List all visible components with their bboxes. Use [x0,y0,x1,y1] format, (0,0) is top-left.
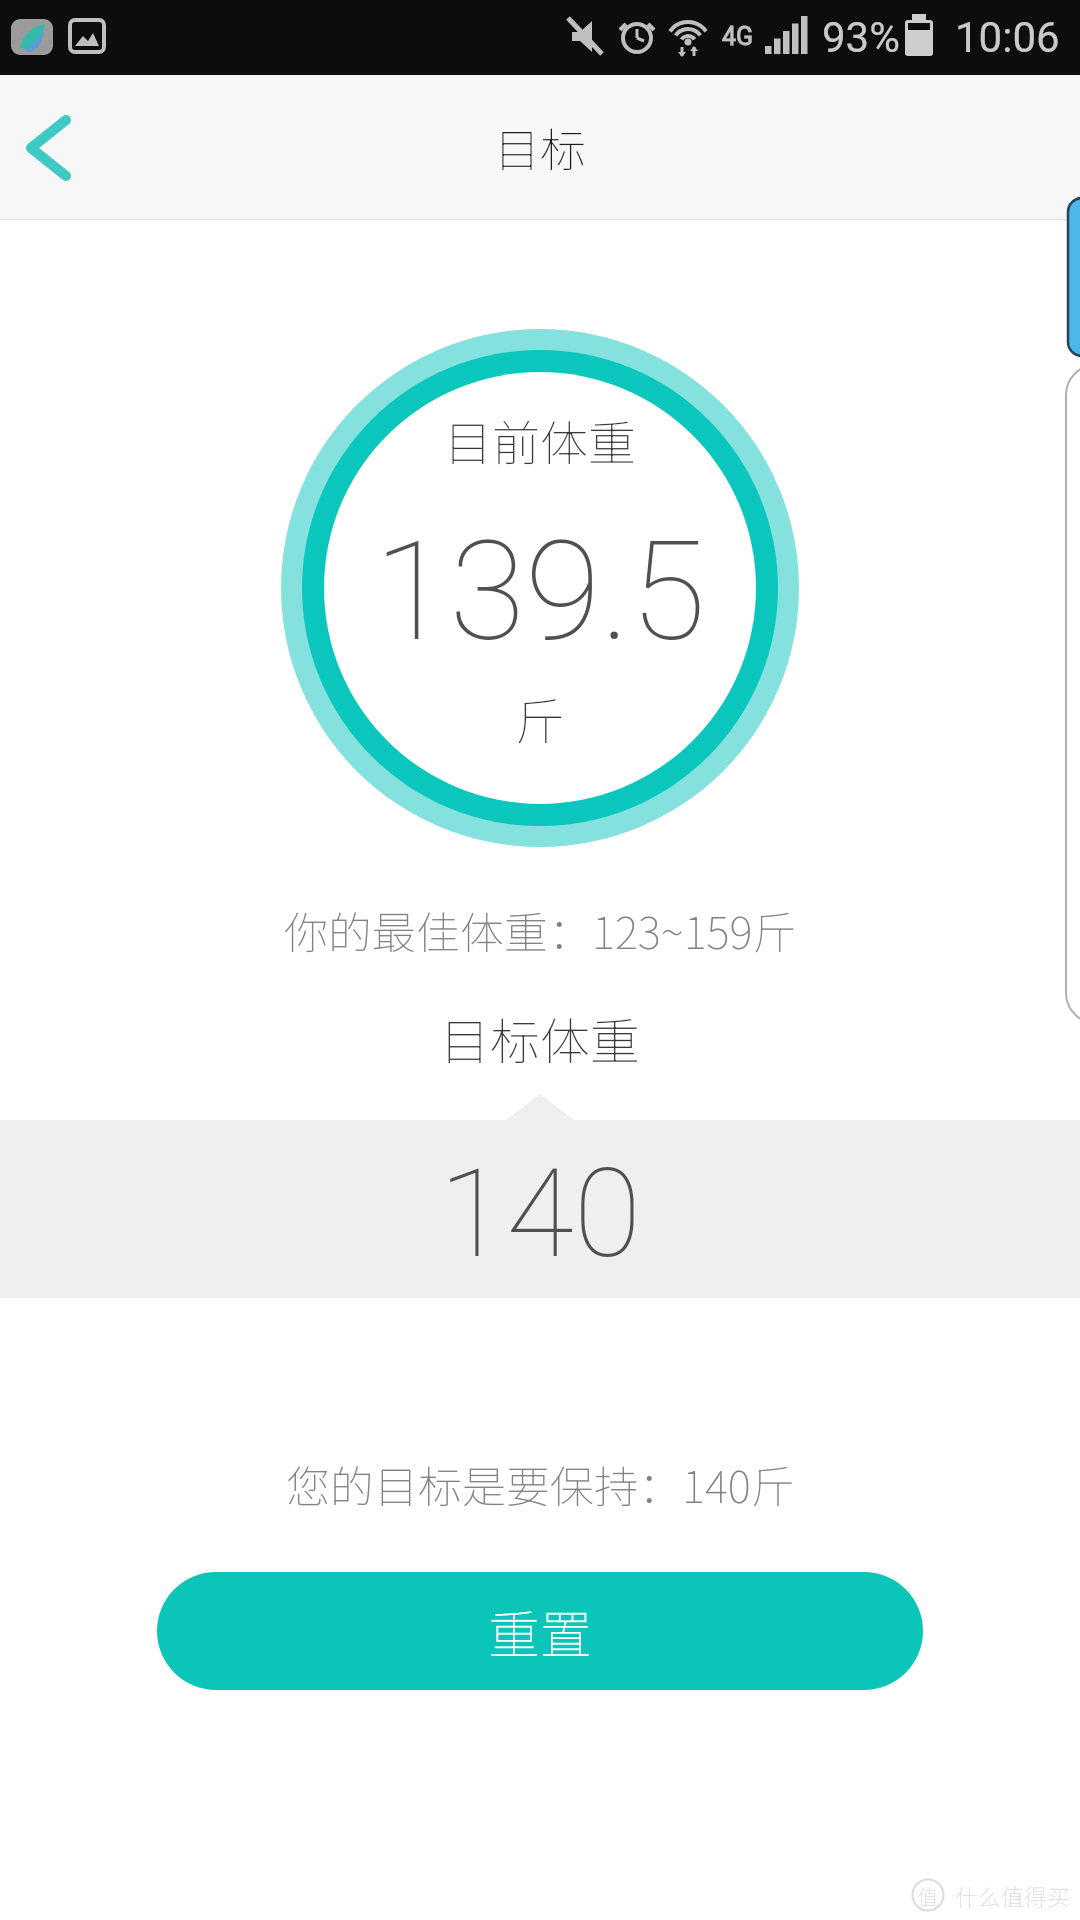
staticText: 值 [917,1881,938,1911]
button[interactable] [0,75,100,220]
staticText: 你的最佳体重：123~159斤 [284,898,797,962]
staticText: 您的目标是要保持：140斤 [286,1452,795,1516]
staticText: 目标 [494,114,586,181]
staticText: 重置 [488,1594,593,1669]
button[interactable]: 重置 [157,1572,923,1690]
staticText: 10:06 [955,13,1060,62]
staticText: 140 [439,1142,641,1286]
staticText: 目前体重 [444,405,637,475]
staticText: 目标体重 [440,1002,640,1074]
staticText: 93% [822,13,900,62]
staticText: 139.5 [374,511,706,673]
staticText: 4G [722,22,754,51]
staticText: 什么值得买 [955,1879,1070,1912]
staticText: 斤 [515,682,565,754]
